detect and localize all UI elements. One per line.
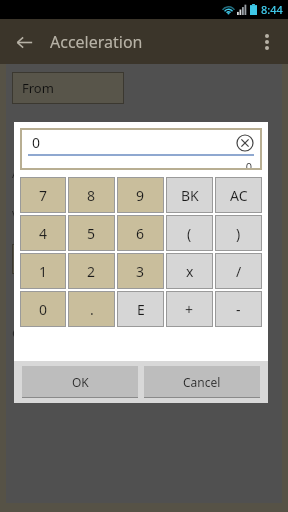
staticText: 2 — [87, 262, 96, 281]
button[interactable]: / — [215, 253, 262, 289]
staticText: / — [236, 262, 242, 281]
staticText: BK — [181, 186, 199, 205]
staticText: 0 — [32, 133, 41, 152]
button[interactable]: AC — [215, 177, 262, 213]
button[interactable]: + — [166, 291, 213, 327]
button[interactable]: Clear — [236, 134, 254, 152]
staticText: 0 — [39, 300, 48, 319]
staticText: E — [137, 300, 145, 319]
button[interactable]: More options — [252, 27, 282, 57]
button[interactable]: 8 — [68, 177, 115, 213]
staticText: A — [12, 166, 20, 181]
button[interactable]: - — [215, 291, 262, 327]
button[interactable]: 6 — [117, 215, 164, 251]
staticText: 0 — [28, 159, 252, 170]
staticText: V — [12, 207, 19, 222]
button[interactable]: 9 — [117, 177, 164, 213]
staticText: 7 — [39, 186, 48, 205]
staticText: 8:44 — [261, 2, 283, 17]
button[interactable]: . — [68, 291, 115, 327]
button[interactable]: 7 — [20, 177, 66, 213]
staticText: Cancel — [183, 374, 221, 390]
staticText: - — [236, 300, 241, 319]
staticText: Gravity — [12, 324, 56, 342]
button[interactable]: ( — [166, 215, 213, 251]
button[interactable]: Cancel — [144, 366, 260, 398]
button[interactable]: E — [117, 291, 164, 327]
staticText: + — [185, 300, 194, 319]
button[interactable]: BK — [166, 177, 213, 213]
staticText: 4 — [39, 224, 48, 243]
staticText: 6 — [136, 224, 145, 243]
staticText: AC — [230, 186, 248, 205]
staticText: 8 — [87, 186, 96, 205]
staticText: 1 — [39, 262, 48, 281]
button[interactable]: 3 — [117, 253, 164, 289]
button[interactable]: From — [12, 72, 124, 104]
button[interactable]: 4 — [20, 215, 66, 251]
staticText: 9 — [136, 186, 145, 205]
button[interactable]: 5 — [68, 215, 115, 251]
staticText: . — [90, 300, 94, 319]
button[interactable]: ) — [215, 215, 262, 251]
button[interactable]: 0 — [20, 291, 66, 327]
staticText: ( — [187, 224, 192, 243]
button[interactable]: 1 — [20, 253, 66, 289]
staticText: Acceleration — [50, 31, 143, 53]
button[interactable]: 2 — [68, 253, 115, 289]
staticText: OK — [72, 374, 89, 390]
staticText: x — [186, 262, 194, 281]
staticText: ) — [236, 224, 241, 243]
button[interactable]: x — [166, 253, 213, 289]
staticText: From — [22, 79, 54, 97]
button[interactable]: OK — [22, 366, 138, 398]
button[interactable]: Back — [10, 28, 38, 56]
staticText: 5 — [87, 224, 96, 243]
button[interactable] — [12, 244, 124, 274]
staticText: 3 — [136, 262, 145, 281]
